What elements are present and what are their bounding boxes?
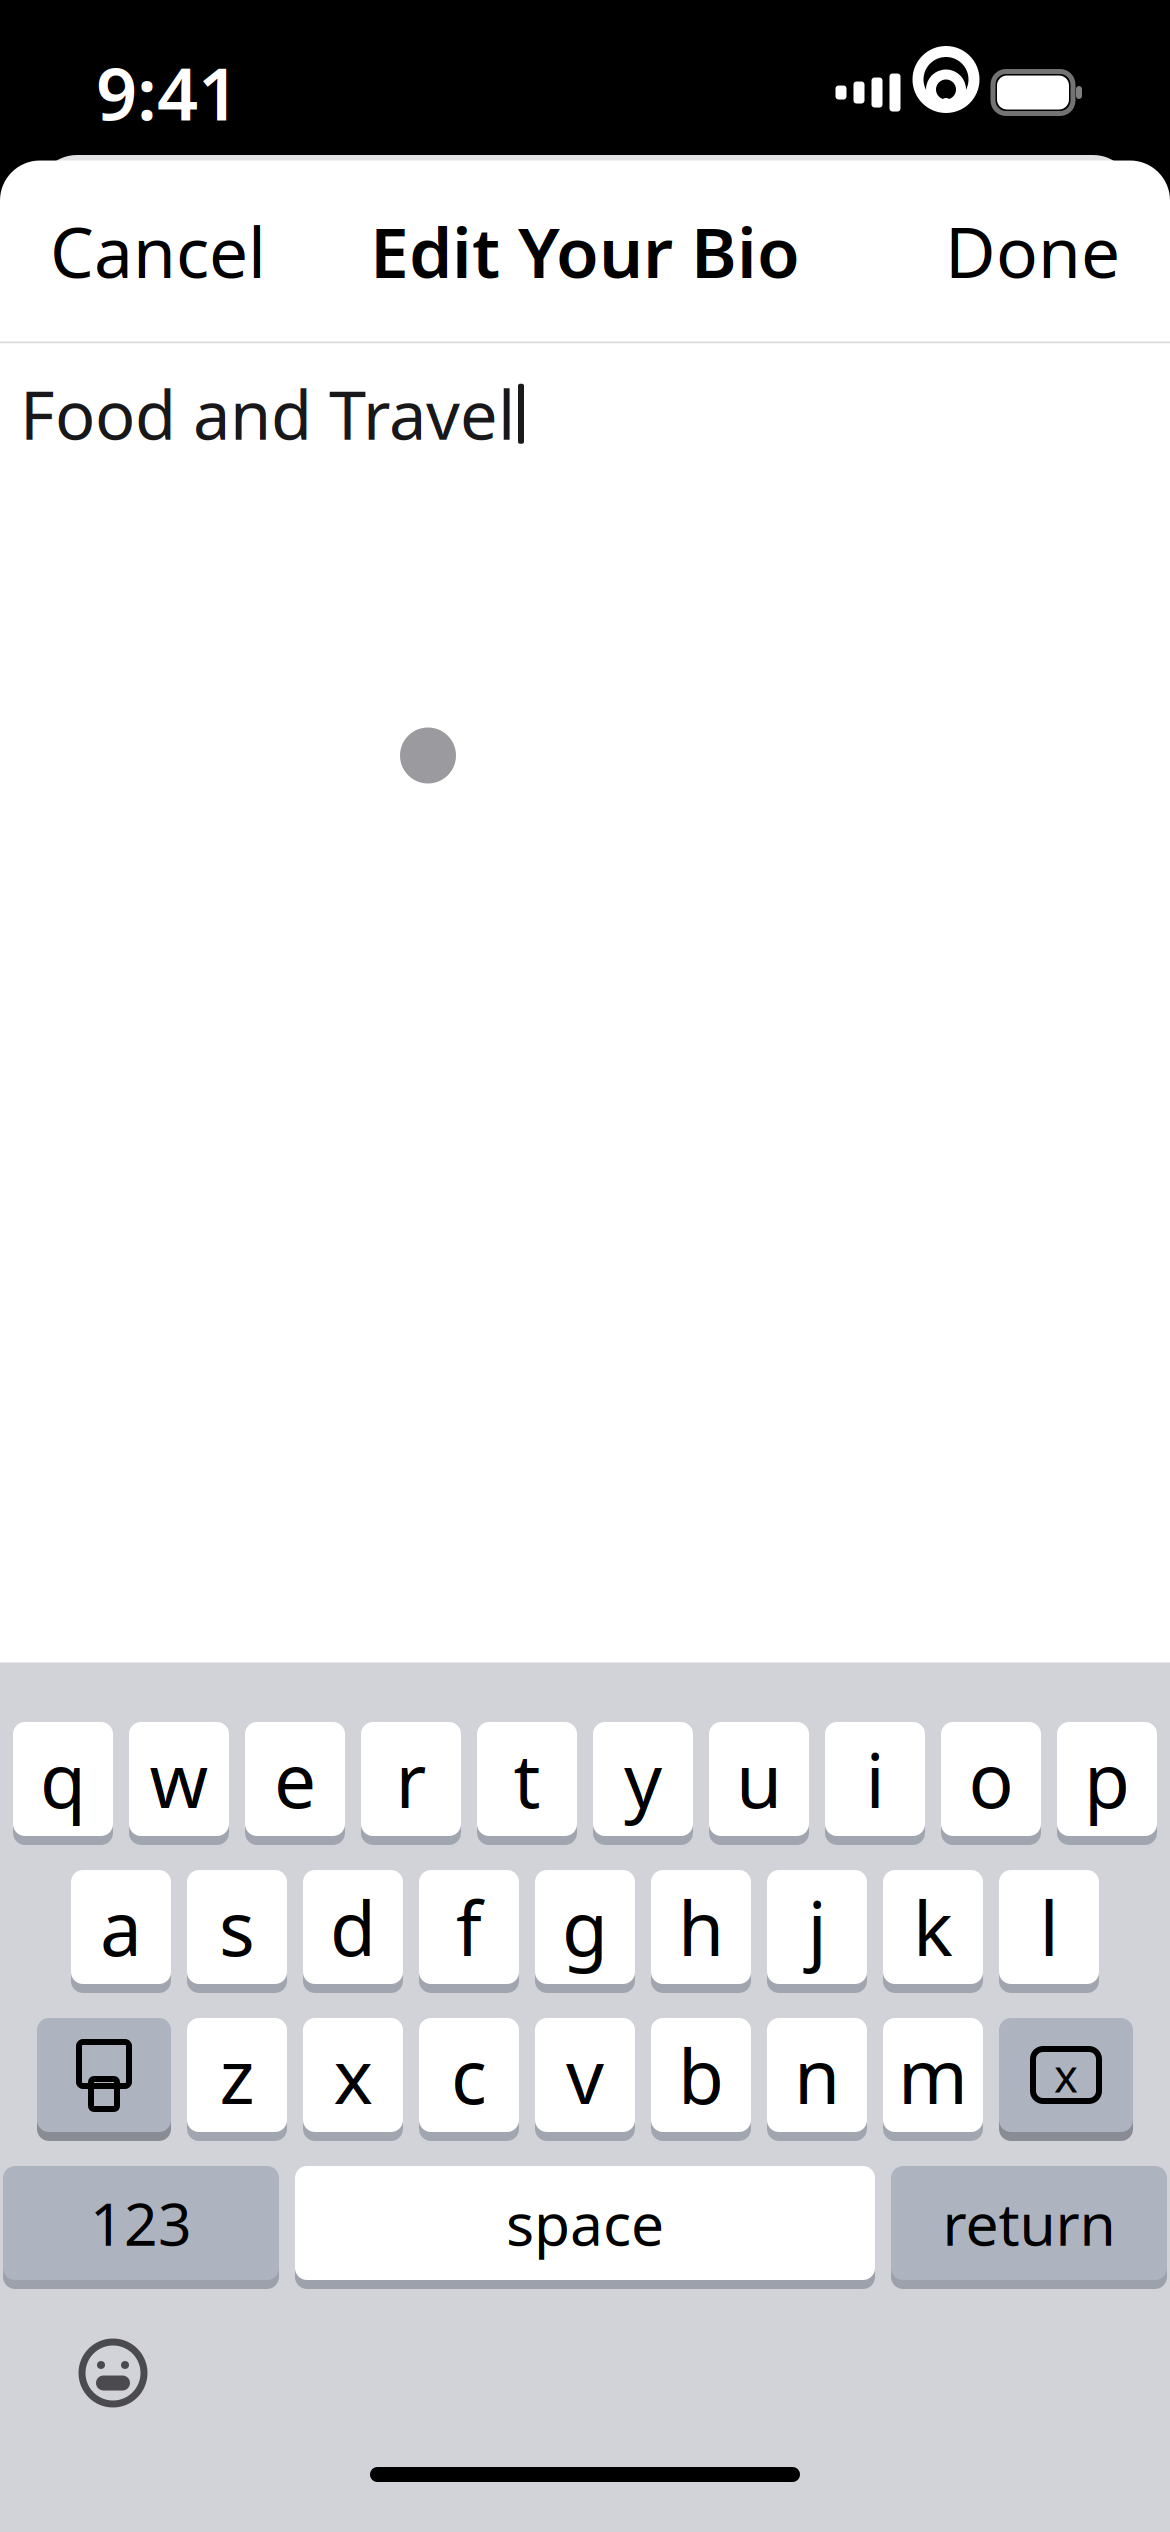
staticText: j — [807, 1877, 826, 1977]
staticText: Food and Travel — [20, 369, 515, 458]
staticText: p — [1084, 1729, 1130, 1829]
staticText: z — [219, 2025, 254, 2125]
staticText: x — [333, 2025, 372, 2125]
staticText: c — [451, 2025, 487, 2125]
button[interactable]: i — [825, 1722, 925, 1842]
staticText: 123 — [90, 2184, 192, 2262]
staticText: x — [1054, 2045, 1078, 2105]
button[interactable]: t — [477, 1722, 577, 1842]
staticText: Cancel — [50, 205, 266, 297]
button[interactable]: m — [883, 2018, 983, 2138]
staticText: y — [624, 1729, 662, 1829]
button[interactable]: q — [13, 1722, 113, 1842]
staticText: v — [566, 2025, 604, 2125]
staticText: Edit Your Bio — [370, 205, 800, 297]
staticText: b — [678, 2025, 724, 2125]
button[interactable]: u — [709, 1722, 809, 1842]
button[interactable]: Emoji — [60, 2326, 166, 2420]
button[interactable]: k — [883, 1870, 983, 1990]
button[interactable]: o — [941, 1722, 1041, 1842]
staticText: 9:41 — [96, 45, 239, 140]
button[interactable]: space — [295, 2166, 875, 2286]
staticText: Done — [945, 205, 1120, 297]
staticText: m — [898, 2025, 968, 2125]
button[interactable]: w — [129, 1722, 229, 1842]
button[interactable]: return — [891, 2166, 1167, 2286]
staticText: a — [100, 1877, 142, 1977]
button[interactable]: Cancel — [36, 189, 280, 313]
staticText: r — [395, 1729, 426, 1829]
button[interactable]: x — [303, 2018, 403, 2138]
staticText: t — [513, 1729, 540, 1829]
staticText: g — [562, 1877, 608, 1977]
staticText: return — [942, 2184, 1115, 2262]
button[interactable]: g — [535, 1870, 635, 1990]
button[interactable]: b — [651, 2018, 751, 2138]
staticText: u — [736, 1729, 782, 1829]
button[interactable]: f — [419, 1870, 519, 1990]
button[interactable]: r — [361, 1722, 461, 1842]
button[interactable]: l — [999, 1870, 1099, 1990]
staticText: l — [1039, 1877, 1058, 1977]
button[interactable]: d — [303, 1870, 403, 1990]
staticText: d — [330, 1877, 376, 1977]
button[interactable]: v — [535, 2018, 635, 2138]
button[interactable]: s — [187, 1870, 287, 1990]
staticText: s — [219, 1877, 255, 1977]
staticText: i — [865, 1729, 884, 1829]
button[interactable]: j — [767, 1870, 867, 1990]
staticText: space — [506, 2184, 664, 2262]
button[interactable]: 123 — [3, 2166, 279, 2286]
button[interactable]: a — [71, 1870, 171, 1990]
button[interactable]: Delete — [999, 2018, 1133, 2138]
button[interactable]: h — [651, 1870, 751, 1990]
button[interactable]: z — [187, 2018, 287, 2138]
button[interactable]: e — [245, 1722, 345, 1842]
button[interactable]: Shift — [37, 2018, 171, 2138]
button[interactable]: c — [419, 2018, 519, 2138]
staticText: h — [678, 1877, 724, 1977]
button[interactable]: n — [767, 2018, 867, 2138]
staticText: o — [968, 1729, 1013, 1829]
button[interactable]: y — [593, 1722, 693, 1842]
staticText: q — [40, 1729, 86, 1829]
staticText: f — [456, 1877, 482, 1977]
staticText: w — [149, 1729, 208, 1829]
staticText: n — [794, 2025, 840, 2125]
staticText: k — [913, 1877, 953, 1977]
button[interactable]: p — [1057, 1722, 1157, 1842]
staticText: e — [274, 1729, 316, 1829]
button[interactable]: Done — [931, 189, 1134, 313]
